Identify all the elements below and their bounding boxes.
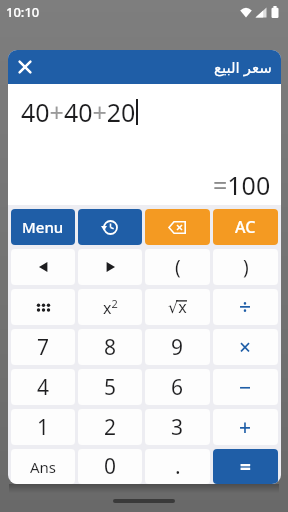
button[interactable]: x2 [78,289,142,325]
staticText: 7 [37,333,50,362]
staticText: 40+40+20 [21,95,136,129]
button[interactable]: × [213,329,278,365]
button[interactable]: − [213,369,278,405]
button[interactable]: ÷ [213,289,278,325]
staticText: 1 [37,413,50,442]
staticText: ( [175,254,181,280]
staticText: x2 [103,296,118,318]
button[interactable]: = [213,449,278,484]
button[interactable] [145,209,210,245]
button[interactable]: 3 [145,409,210,445]
button[interactable]: Ans [11,449,75,484]
button[interactable]: 2 [78,409,142,445]
button[interactable]: 1 [11,409,75,445]
staticText: = [240,454,251,480]
staticText: =100 [213,168,271,202]
button[interactable]: √x [145,289,210,325]
staticText: 0 [104,452,117,481]
button[interactable] [78,249,142,285]
staticText: − [239,373,252,402]
button[interactable]: 7 [11,329,75,365]
staticText: 9 [171,333,184,362]
staticText: 8 [104,333,117,362]
staticText: 5 [104,373,117,402]
staticText: . [175,452,181,481]
button[interactable] [8,50,42,84]
button[interactable]: 9 [145,329,210,365]
staticText: 10:10 [6,3,40,21]
button[interactable] [11,249,75,285]
staticText: Menu [22,217,64,237]
button[interactable]: 6 [145,369,210,405]
button[interactable]: 8 [78,329,142,365]
staticText: ÷ [239,293,252,322]
staticText: + [239,413,252,442]
button[interactable]: Menu [11,209,75,245]
button[interactable]: 0 [78,449,142,484]
staticText: 4 [37,373,50,402]
staticText: Ans [30,457,57,477]
staticText: ) [243,254,249,280]
button[interactable] [78,209,142,245]
button[interactable]: ( [145,249,210,285]
button[interactable]: 4 [11,369,75,405]
staticText: 2 [104,413,117,442]
button[interactable]: AC [213,209,278,245]
staticText: سعر البيع [214,57,272,77]
button[interactable]: + [213,409,278,445]
button[interactable] [113,499,175,503]
button[interactable] [11,289,75,325]
staticText: × [239,333,252,362]
staticText: AC [235,216,256,238]
staticText: 6 [171,373,184,402]
staticText: 3 [171,413,184,442]
staticText: √x [168,296,187,318]
button[interactable]: ) [213,249,278,285]
button[interactable]: . [145,449,210,484]
button[interactable]: 5 [78,369,142,405]
